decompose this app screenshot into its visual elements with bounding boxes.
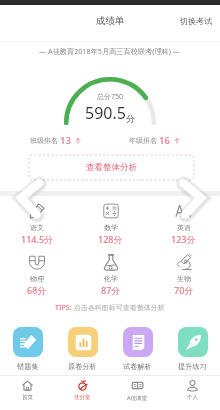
staticText: — A佳教育2018年5月高三百校联考(理科) — <box>39 46 181 56</box>
staticText: 物理 <box>30 274 44 283</box>
button[interactable]: 化学 <box>74 253 147 296</box>
staticText: 123分 <box>171 233 196 245</box>
button[interactable]: 英语 <box>147 202 220 245</box>
button[interactable]: A佳课堂 <box>110 376 165 402</box>
button[interactable]: 错题集 <box>0 327 55 371</box>
staticText: 分 <box>126 113 135 124</box>
button[interactable]: 切换考试 <box>172 11 220 31</box>
staticText: 70分 <box>174 284 194 296</box>
staticText: 87分 <box>101 284 121 296</box>
staticText: 错题集 <box>17 362 39 371</box>
staticText: 128分 <box>98 233 123 245</box>
staticText: 年级排名 <box>129 136 157 145</box>
staticText: 成绩单 <box>96 15 125 27</box>
button[interactable]: 佳分室 <box>55 376 110 401</box>
staticText: 个人 <box>187 394 198 401</box>
staticText: 切换考试 <box>180 16 212 26</box>
button[interactable]: 年级排名 <box>129 134 180 147</box>
button[interactable]: 数学 <box>74 202 147 245</box>
button[interactable]: 查看整体分析 <box>29 155 194 180</box>
button[interactable]: 班级排名 <box>30 134 81 147</box>
button[interactable]: 原卷分析 <box>55 327 110 371</box>
staticText: 590.5 <box>85 102 126 124</box>
staticText: 总分750 <box>97 92 124 102</box>
staticText: 114.5分 <box>21 233 54 245</box>
staticText: 原卷分析 <box>68 362 97 371</box>
button[interactable]: 提升练习 <box>165 327 220 371</box>
staticText: 提升练习 <box>178 362 207 371</box>
staticText: 数学 <box>104 223 118 232</box>
button[interactable]: 个人 <box>165 376 220 401</box>
button[interactable]: 语文 <box>0 202 74 245</box>
staticText: 试卷解析 <box>123 362 152 371</box>
staticText: 16 <box>159 134 170 147</box>
staticText: 佳分室 <box>74 394 91 401</box>
staticText: 68分 <box>27 284 47 296</box>
staticText: TIPS: <box>55 303 72 313</box>
staticText: 生物 <box>177 274 191 283</box>
staticText: 首页 <box>22 394 33 401</box>
staticText: 语文 <box>30 223 44 232</box>
staticText: 点击各科图标可查看整体分析 <box>72 303 165 313</box>
staticText: 班级排名 <box>30 136 58 145</box>
button[interactable]: 生物 <box>147 253 220 296</box>
staticText: A佳课堂 <box>127 394 148 402</box>
staticText: 英语 <box>177 223 191 232</box>
button[interactable]: 首页 <box>0 376 55 401</box>
staticText: 13 <box>60 134 71 147</box>
staticText: 查看整体分析 <box>86 162 137 173</box>
staticText: 化学 <box>104 274 118 283</box>
button[interactable]: 物理 <box>0 253 74 296</box>
button[interactable]: 试卷解析 <box>110 327 165 371</box>
